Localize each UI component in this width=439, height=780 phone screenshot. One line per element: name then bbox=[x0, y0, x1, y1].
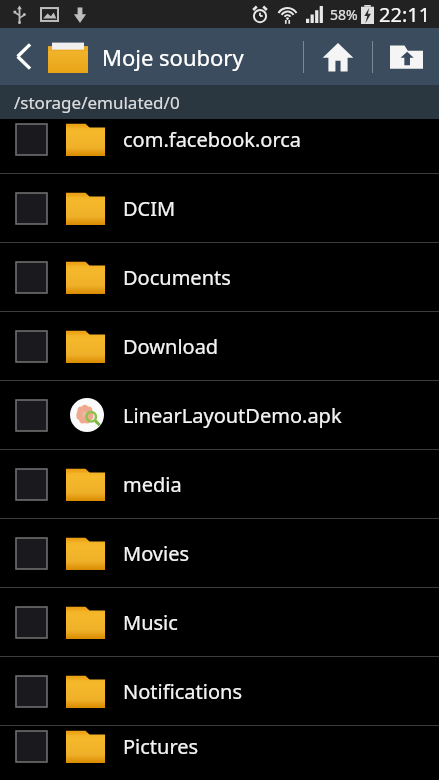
staticText: Music bbox=[123, 609, 178, 636]
staticText: Movies bbox=[123, 540, 190, 567]
button[interactable]: Home bbox=[304, 28, 372, 85]
staticText: Notifications bbox=[123, 678, 242, 705]
staticText: Pictures bbox=[123, 733, 199, 760]
staticText: DCIM bbox=[123, 195, 176, 222]
button[interactable]: LinearLayoutDemo.apk bbox=[0, 381, 439, 449]
staticText: 58% bbox=[330, 5, 358, 24]
button[interactable]: DCIM bbox=[0, 174, 439, 242]
button[interactable]: Pictures bbox=[0, 726, 439, 766]
button[interactable]: Music bbox=[0, 588, 439, 656]
staticText: 22:11 bbox=[379, 1, 431, 28]
button[interactable]: Movies bbox=[0, 519, 439, 587]
button[interactable]: com.facebook.orca bbox=[0, 119, 439, 173]
staticText: LinearLayoutDemo.apk bbox=[123, 402, 342, 429]
staticText: Moje soubory bbox=[102, 42, 244, 72]
staticText: media bbox=[123, 471, 182, 498]
button[interactable]: Download bbox=[0, 312, 439, 380]
staticText: com.facebook.orca bbox=[123, 126, 302, 153]
staticText: Download bbox=[123, 333, 219, 360]
button[interactable]: Notifications bbox=[0, 657, 439, 725]
staticText: /storage/emulated/0 bbox=[14, 91, 180, 114]
button[interactable]: Back bbox=[0, 28, 48, 85]
staticText: Documents bbox=[123, 264, 231, 291]
button[interactable]: Up one level bbox=[373, 28, 439, 85]
button[interactable]: media bbox=[0, 450, 439, 518]
button[interactable]: Documents bbox=[0, 243, 439, 311]
